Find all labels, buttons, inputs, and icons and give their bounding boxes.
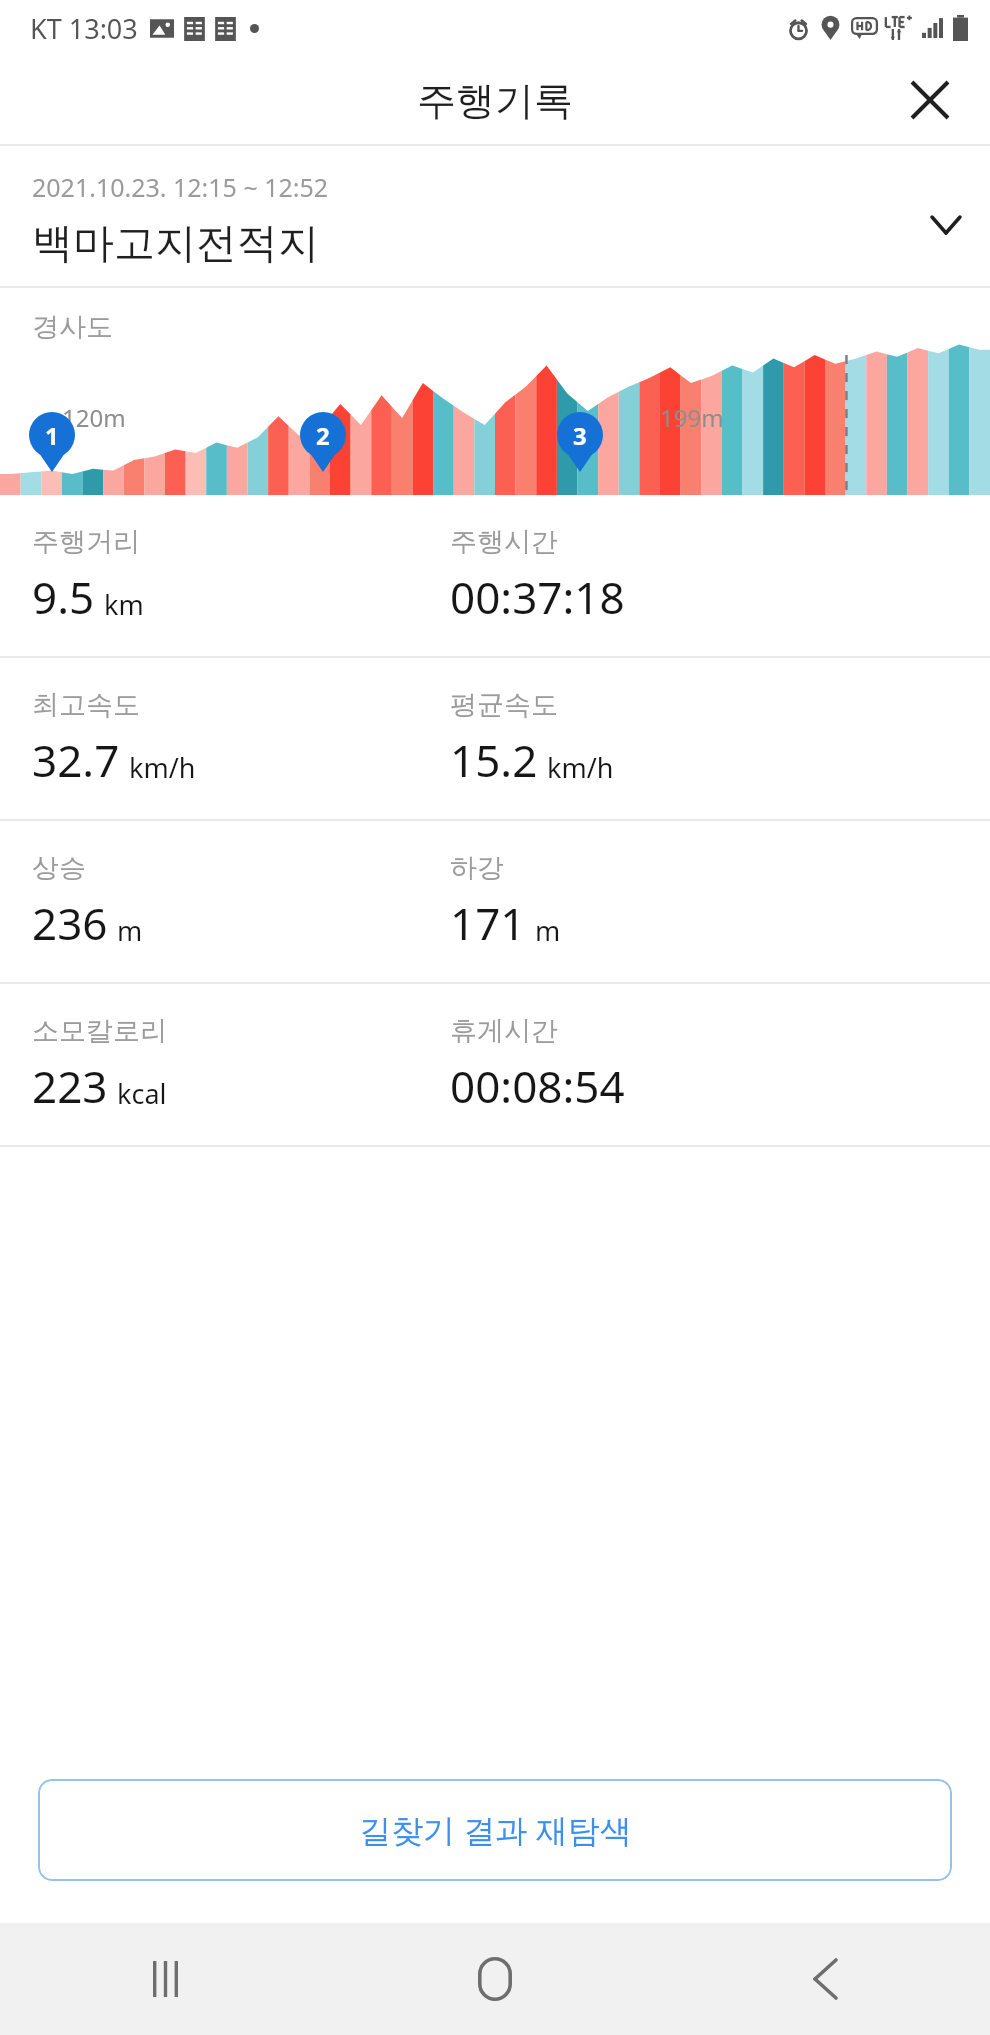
- staticText: 소모칼로리: [32, 1014, 167, 1048]
- staticText: 00:08:54: [450, 1056, 625, 1116]
- staticText: 경사도: [32, 310, 113, 344]
- staticText: 9.5: [32, 567, 95, 627]
- staticText: 최고속도: [32, 688, 140, 722]
- staticText: 주행거리: [32, 525, 140, 559]
- button[interactable]: 평균속도: [450, 658, 990, 819]
- staticText: m: [535, 912, 561, 949]
- button[interactable]: 주행시간: [450, 495, 990, 656]
- button[interactable]: 길찾기 결과 재탐색: [38, 1779, 952, 1881]
- staticText: km: [104, 586, 144, 623]
- staticText: 2021.10.23. 12:15 ~ 12:52: [32, 170, 329, 204]
- button[interactable]: Waypoint 2: [300, 412, 346, 472]
- button[interactable]: Recents: [0, 1923, 330, 2035]
- staticText: 199m: [660, 401, 724, 434]
- staticText: 주행시간: [450, 525, 558, 559]
- staticText: 32.7: [32, 730, 120, 790]
- staticText: 171: [450, 893, 526, 953]
- button[interactable]: Waypoint 3: [557, 412, 603, 472]
- button[interactable]: 상승: [32, 821, 450, 982]
- staticText: 236: [32, 893, 108, 953]
- staticText: km/h: [129, 749, 196, 786]
- staticText: 2: [316, 419, 330, 452]
- button[interactable]: Close: [890, 60, 970, 140]
- staticText: km/h: [547, 749, 614, 786]
- button[interactable]: Home: [330, 1923, 660, 2035]
- button[interactable]: 하강: [450, 821, 990, 982]
- staticText: m: [117, 912, 143, 949]
- staticText: 하강: [450, 851, 504, 885]
- staticText: 00:37:18: [450, 567, 625, 627]
- staticText: 백마고지전적지: [32, 218, 319, 270]
- staticText: 3: [573, 419, 587, 452]
- staticText: kcal: [117, 1075, 167, 1112]
- staticText: KT 13:03: [30, 10, 138, 47]
- button[interactable]: 휴게시간: [450, 984, 990, 1145]
- button[interactable]: 주행거리: [32, 495, 450, 656]
- staticText: 120m: [62, 401, 126, 434]
- staticText: 223: [32, 1056, 108, 1116]
- button[interactable]: Waypoint 1: [29, 412, 75, 472]
- staticText: 15.2: [450, 730, 538, 790]
- staticText: 휴게시간: [450, 1014, 558, 1048]
- button[interactable]: 2021.10.23. 12:15 ~ 12:52: [0, 146, 990, 286]
- button[interactable]: 최고속도: [32, 658, 450, 819]
- staticText: 상승: [32, 851, 86, 885]
- staticText: 평균속도: [450, 688, 558, 722]
- staticText: 1: [45, 419, 59, 452]
- staticText: 주행기록: [417, 76, 573, 125]
- button[interactable]: 소모칼로리: [32, 984, 450, 1145]
- staticText: 길찾기 결과 재탐색: [359, 1808, 632, 1852]
- button[interactable]: Back: [660, 1923, 990, 2035]
